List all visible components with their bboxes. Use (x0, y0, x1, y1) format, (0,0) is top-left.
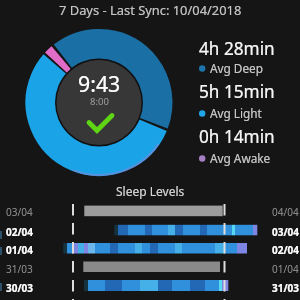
staticText: Avg Light (210, 105, 262, 121)
staticText: Sleep Levels (116, 183, 185, 199)
staticText: 03/04 (272, 225, 300, 239)
staticText: 03/04 (6, 205, 33, 219)
staticText: 30/03 (6, 281, 34, 295)
staticText: 04/04 (272, 205, 299, 219)
button[interactable]: 4h 28min (199, 37, 275, 60)
staticText: 31/03 (272, 281, 300, 295)
staticText: 0h 14min (199, 125, 275, 148)
staticText: 01/04 (272, 262, 299, 276)
staticText: 4h 28min (199, 37, 275, 60)
button[interactable]: 5h 15min (199, 80, 275, 103)
staticText: 02/04 (6, 225, 34, 239)
button[interactable]: Avg Awake (199, 150, 271, 166)
button[interactable]: Avg Light (199, 105, 262, 121)
staticText: 8:00 (90, 95, 109, 108)
staticText: 7 Days - Last Sync: 10/04/2018 (59, 1, 242, 19)
staticText: Avg Deep (210, 60, 264, 76)
button[interactable]: 0h 14min (199, 125, 275, 148)
staticText: 31/03 (6, 262, 33, 276)
staticText: 02/04 (272, 243, 300, 257)
staticText: 5h 15min (199, 80, 275, 103)
staticText: Avg Awake (210, 150, 271, 166)
staticText: 01/04 (6, 243, 34, 257)
button[interactable]: Avg Deep (199, 60, 264, 76)
staticText: 9:43 (78, 69, 121, 98)
